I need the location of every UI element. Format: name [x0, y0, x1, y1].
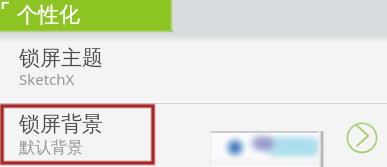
- button[interactable]: Open wallpaper chooser: [345, 121, 379, 155]
- staticText: 锁屏背景: [19, 111, 103, 137]
- staticText: SketchX: [19, 69, 75, 89]
- button[interactable]: 锁屏背景: [0, 104, 387, 167]
- staticText: 默认背景: [19, 138, 83, 158]
- staticText: 锁屏主题: [19, 45, 103, 71]
- staticText: 个性化: [17, 2, 80, 28]
- button[interactable]: 锁屏主题: [0, 42, 387, 101]
